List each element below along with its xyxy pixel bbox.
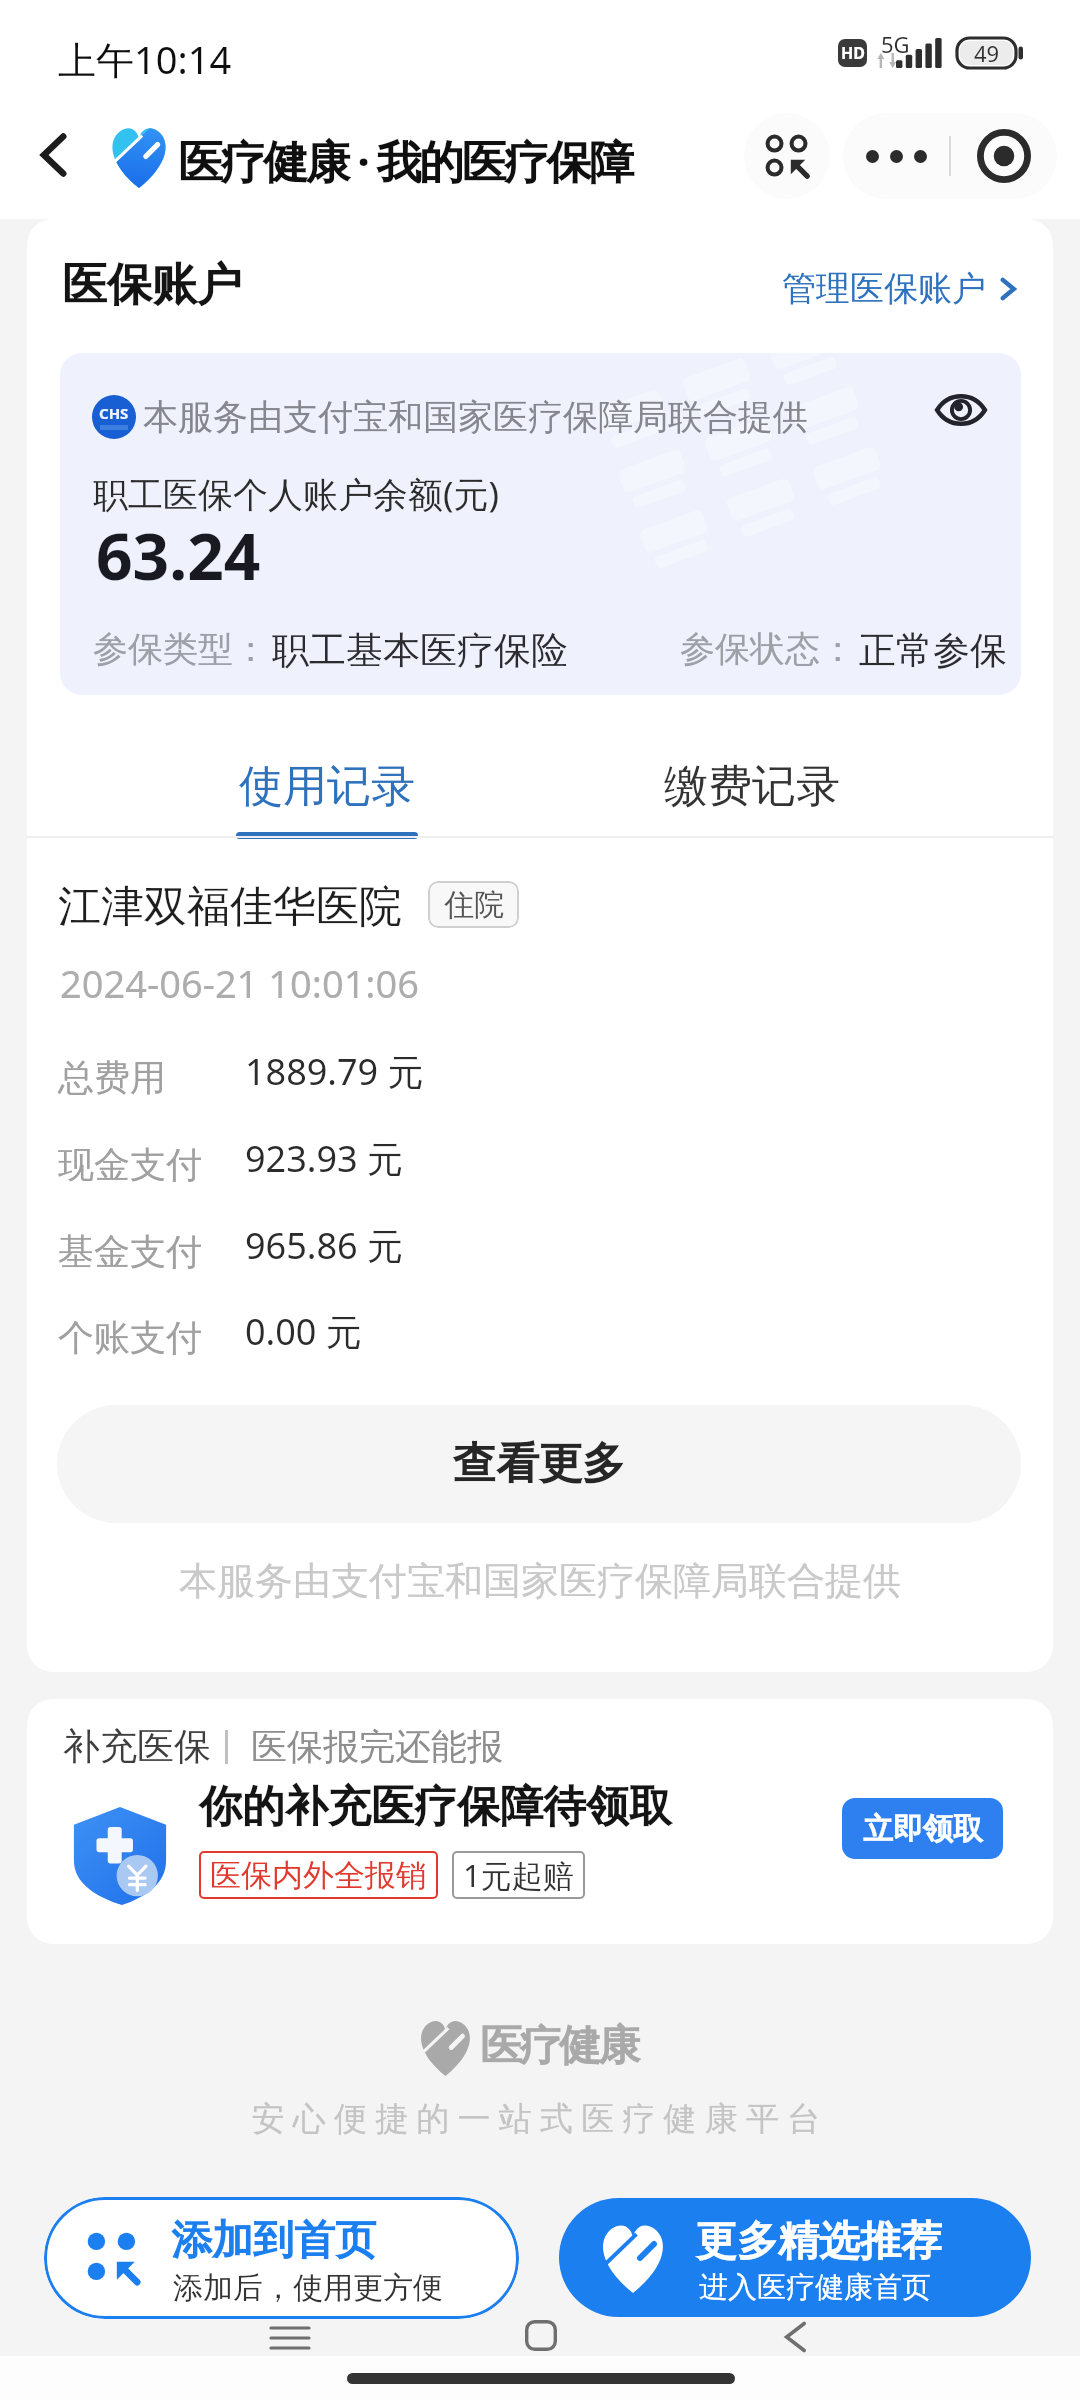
staticText: 江津双福佳华医院 [58, 880, 402, 934]
staticText: 基金支付 [58, 1229, 202, 1274]
staticText: 缴费记录 [664, 759, 840, 814]
staticText: 1元起赔 [463, 1854, 574, 1896]
staticText: 上午10:14 [58, 33, 232, 85]
button[interactable]: 立即领取 [842, 1798, 1003, 1859]
button[interactable]: Back [767, 2309, 823, 2365]
staticText: 5G [881, 29, 910, 59]
button[interactable]: Recent apps [262, 2310, 318, 2366]
staticText: 住院 [444, 886, 504, 924]
staticText: 1889.79 元 [245, 1047, 424, 1096]
button[interactable]: More options [843, 113, 949, 199]
button[interactable]: 更多精选推荐 [559, 2198, 1031, 2317]
staticText: 添加到首页 [171, 2215, 376, 2267]
staticText: 63.24 [96, 512, 261, 599]
staticText: 立即领取 [863, 1810, 983, 1848]
staticText: 2024-06-21 10:01:06 [60, 957, 420, 1009]
staticText: 管理医保账户 [782, 267, 986, 310]
staticText: 49 [974, 38, 1000, 68]
staticText: 医疗健康 · 我的医疗保障 [178, 130, 632, 191]
button[interactable]: Home [513, 2307, 569, 2363]
staticText: 0.00 元 [245, 1307, 362, 1356]
staticText: 现金支付 [58, 1142, 202, 1187]
staticText: 医保账户 [62, 257, 242, 314]
button[interactable]: 查看更多 [57, 1405, 1021, 1523]
button[interactable]: Back [18, 119, 90, 191]
staticText: 总费用 [58, 1055, 166, 1100]
staticText: 本服务由支付宝和国家医疗保障局联合提供 [143, 395, 808, 439]
staticText: 923.93 元 [245, 1134, 403, 1183]
staticText: CHS [99, 403, 129, 423]
staticText: 个账支付 [58, 1315, 202, 1360]
staticText: 添加后，使用更方便 [173, 2269, 443, 2307]
staticText: 进入医疗健康首页 [699, 2269, 931, 2306]
staticText: 医保报完还能报 [251, 1724, 503, 1769]
staticText: HD [841, 42, 865, 64]
staticText: 医疗健康 [481, 2020, 639, 2073]
staticText: 查看更多 [453, 1437, 625, 1491]
staticText: 职工基本医疗保险 [272, 627, 568, 674]
staticText: 医保内外全报销 [210, 1856, 427, 1895]
staticText: 使用记录 [239, 759, 415, 814]
button[interactable]: Mini program panel [744, 113, 830, 199]
button[interactable]: 缴费记录 [632, 759, 872, 857]
staticText: 965.86 元 [245, 1221, 403, 1270]
staticText: 职工医保个人账户余额(元) [93, 470, 500, 518]
button[interactable]: 添加到首页 [44, 2197, 519, 2319]
staticText: 你的补充医疗保障待领取 [199, 1780, 672, 1834]
staticText: 正常参保 [859, 627, 1007, 674]
staticText: 参保类型： [93, 627, 268, 671]
button[interactable]: 管理医保账户 [774, 259, 1028, 318]
staticText: 本服务由支付宝和国家医疗保障局联合提供 [27, 1557, 1053, 1605]
staticText: 更多精选推荐 [696, 2216, 942, 2268]
staticText: 参保状态： [680, 627, 855, 671]
button[interactable]: 补充医保 [27, 1699, 1053, 1944]
button[interactable]: 使用记录 [207, 759, 447, 857]
button[interactable]: Close mini program [951, 113, 1057, 199]
staticText: 安心便捷的一站式医疗健康平台 [0, 2098, 1080, 2140]
staticText: 补充医保 [63, 1723, 211, 1770]
button[interactable]: Toggle balance visibility [933, 382, 989, 438]
